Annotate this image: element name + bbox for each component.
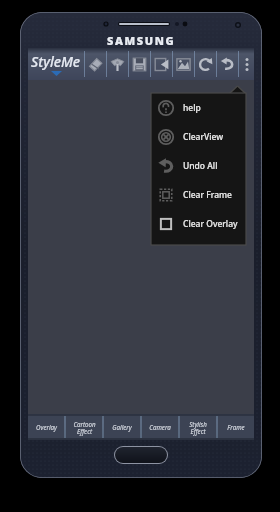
button[interactable]: ClearView: [151, 122, 246, 151]
staticText: StyleMe: [31, 52, 81, 71]
button[interactable]: Brush: [107, 48, 128, 80]
button[interactable]: Export: [151, 48, 172, 80]
button[interactable]: help: [151, 93, 246, 122]
button[interactable]: Stylish Effect: [180, 416, 216, 438]
staticText: Cartoon Effect: [73, 420, 96, 435]
button[interactable]: More options: [239, 48, 254, 80]
staticText: SAMSUNG: [107, 33, 176, 48]
button[interactable]: Cartoon Effect: [66, 416, 102, 438]
staticText: Frame: [227, 423, 245, 431]
button[interactable]: StyleMe: [28, 48, 84, 80]
staticText: Clear Frame: [183, 189, 232, 201]
button[interactable]: Home: [115, 447, 167, 463]
button[interactable]: Camera: [142, 416, 178, 438]
staticText: Camera: [149, 423, 171, 431]
staticText: Clear Overlay: [183, 218, 238, 230]
button[interactable]: Frame: [218, 416, 254, 438]
staticText: Gallery: [112, 423, 132, 431]
staticText: Stylish Effect: [189, 420, 207, 435]
staticText: Undo All: [183, 160, 218, 172]
button[interactable]: Pencil: [85, 48, 106, 80]
button[interactable]: Effects: [173, 48, 194, 80]
button[interactable]: Save: [129, 48, 150, 80]
button[interactable]: Overlay: [28, 416, 64, 438]
button[interactable]: Clear Frame: [151, 180, 246, 209]
staticText: Overlay: [36, 423, 57, 431]
button[interactable]: Gallery: [104, 416, 140, 438]
button[interactable]: Clear Overlay: [151, 209, 246, 238]
button[interactable]: Undo: [217, 48, 238, 80]
button[interactable]: Undo All: [151, 151, 246, 180]
button[interactable]: Redo: [195, 48, 216, 80]
staticText: ClearView: [183, 131, 224, 143]
staticText: help: [183, 102, 201, 114]
